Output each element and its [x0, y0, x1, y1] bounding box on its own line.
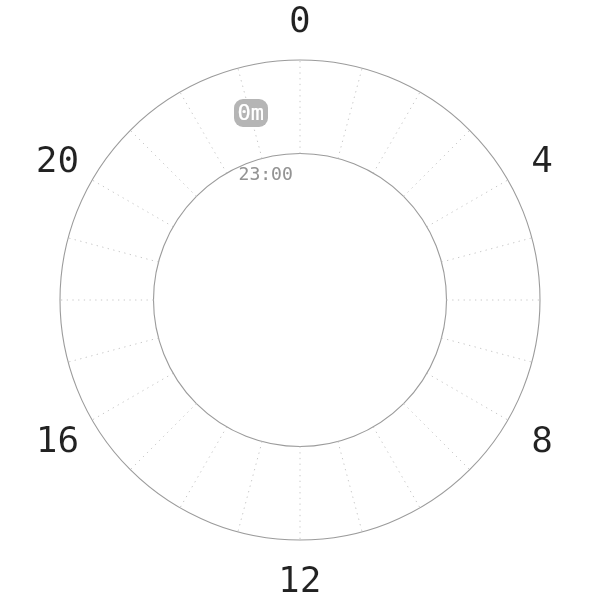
button[interactable]: 24 hour activity ring	[0, 0, 600, 600]
button[interactable]: 0 minutes at 23:00	[234, 99, 268, 127]
